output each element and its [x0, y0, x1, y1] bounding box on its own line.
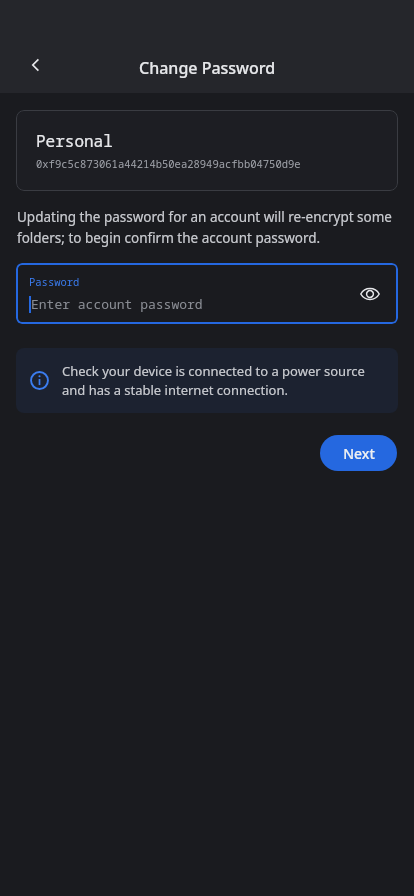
- button[interactable]: Next: [320, 435, 397, 471]
- staticText: Next: [343, 444, 375, 463]
- staticText: Change Password: [139, 57, 276, 79]
- staticText: Personal: [36, 130, 113, 152]
- staticText: Enter account password: [31, 295, 203, 313]
- button[interactable]: Back: [14, 43, 58, 87]
- button[interactable]: Show password: [352, 276, 388, 312]
- button[interactable]: Personal: [16, 110, 398, 191]
- staticText: Check your device is connected to a powe…: [62, 362, 382, 399]
- staticText: Updating the password for an account wil…: [17, 208, 397, 247]
- button[interactable]: Password: [16, 263, 398, 324]
- staticText: Password: [29, 275, 80, 289]
- staticText: 0xf9c5c873061a44214b50ea28949acfbb04750d…: [36, 157, 301, 171]
